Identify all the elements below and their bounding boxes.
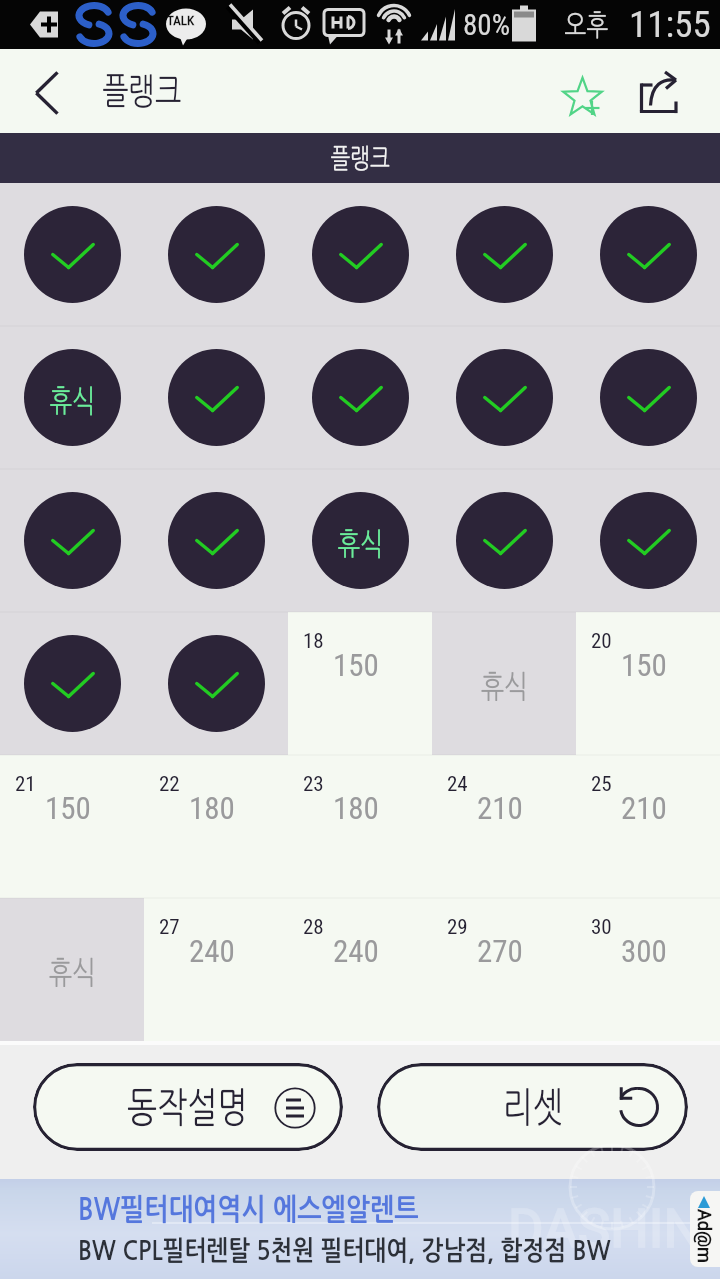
staticText: 180 — [333, 790, 379, 826]
staticText: 240 — [333, 933, 379, 969]
staticText: 플랭크 — [102, 73, 182, 109]
button[interactable] — [432, 183, 576, 326]
staticText: 29 — [447, 915, 468, 940]
staticText: 플랭크 — [330, 145, 391, 172]
button[interactable] — [288, 183, 432, 326]
button[interactable]: 30 — [576, 898, 720, 1041]
button[interactable]: 플랭크 — [0, 133, 720, 183]
staticText: Ad@m — [694, 1209, 715, 1263]
button[interactable]: 휴식 — [0, 326, 144, 469]
button[interactable] — [432, 469, 576, 612]
button[interactable] — [144, 469, 288, 612]
staticText: 휴식 — [49, 385, 95, 416]
staticText: 80% — [463, 8, 510, 42]
button[interactable]: Share — [640, 49, 718, 133]
button[interactable]: 23 — [288, 755, 432, 898]
button[interactable]: 28 — [288, 898, 432, 1041]
staticText: 210 — [621, 790, 667, 826]
staticText: 동작설명 — [127, 1087, 248, 1128]
button[interactable]: 휴식 — [288, 469, 432, 612]
button[interactable] — [576, 183, 720, 326]
staticText: 25 — [591, 772, 612, 797]
button[interactable]: 20 — [576, 612, 720, 755]
button[interactable]: 휴식 — [0, 898, 144, 1041]
button[interactable]: 21 — [0, 755, 144, 898]
button[interactable]: 리셋 — [377, 1063, 688, 1151]
staticText: 휴식 — [49, 957, 96, 989]
staticText: 21 — [15, 772, 36, 797]
staticText: 20 — [591, 629, 612, 654]
staticText: 30 — [591, 915, 612, 940]
staticText: TALK — [167, 13, 195, 28]
staticText: 24 — [447, 772, 468, 797]
button[interactable]: 29 — [432, 898, 576, 1041]
button[interactable]: 25 — [576, 755, 720, 898]
staticText: 27 — [159, 915, 180, 940]
staticText: 210 — [477, 790, 523, 826]
staticText: 휴식 — [337, 528, 383, 559]
button[interactable] — [0, 183, 144, 326]
button[interactable] — [144, 326, 288, 469]
staticText: 18 — [303, 629, 324, 654]
button[interactable] — [144, 612, 288, 755]
staticText: 150 — [45, 790, 91, 826]
button[interactable]: Add to favourites — [534, 49, 640, 133]
staticText: BW필터대여역시 에스엘알렌트 — [78, 1195, 419, 1225]
button[interactable] — [576, 326, 720, 469]
button[interactable] — [144, 183, 288, 326]
staticText: 270 — [477, 933, 523, 969]
staticText: 150 — [621, 647, 667, 683]
button[interactable] — [0, 469, 144, 612]
staticText: 오후 — [564, 10, 609, 40]
button[interactable] — [0, 612, 144, 755]
button[interactable]: 18 — [288, 612, 432, 755]
staticText: 28 — [303, 915, 324, 940]
staticText: 150 — [333, 647, 379, 683]
staticText: 300 — [621, 933, 667, 969]
button[interactable] — [576, 469, 720, 612]
staticText: 11:55 — [629, 3, 711, 46]
button[interactable]: DASHIN — [0, 1179, 720, 1279]
button[interactable] — [432, 326, 576, 469]
button[interactable]: 동작설명 — [33, 1063, 343, 1151]
button[interactable]: Back — [0, 49, 86, 133]
staticText: 휴식 — [481, 671, 528, 703]
button[interactable]: 24 — [432, 755, 576, 898]
staticText: 23 — [303, 772, 324, 797]
button[interactable]: 휴식 — [432, 612, 576, 755]
button[interactable]: Ad — [690, 1191, 720, 1267]
button[interactable]: 27 — [144, 898, 288, 1041]
staticText: 180 — [189, 790, 235, 826]
staticText: 리셋 — [503, 1087, 563, 1128]
button[interactable]: 22 — [144, 755, 288, 898]
staticText: DASHIN — [508, 1197, 702, 1260]
staticText: 22 — [159, 772, 180, 797]
staticText: 240 — [189, 933, 235, 969]
button[interactable] — [288, 326, 432, 469]
staticText: BW CPL필터렌탈 5천원 필터대여, 강남점, 합정점 BW — [78, 1237, 611, 1264]
